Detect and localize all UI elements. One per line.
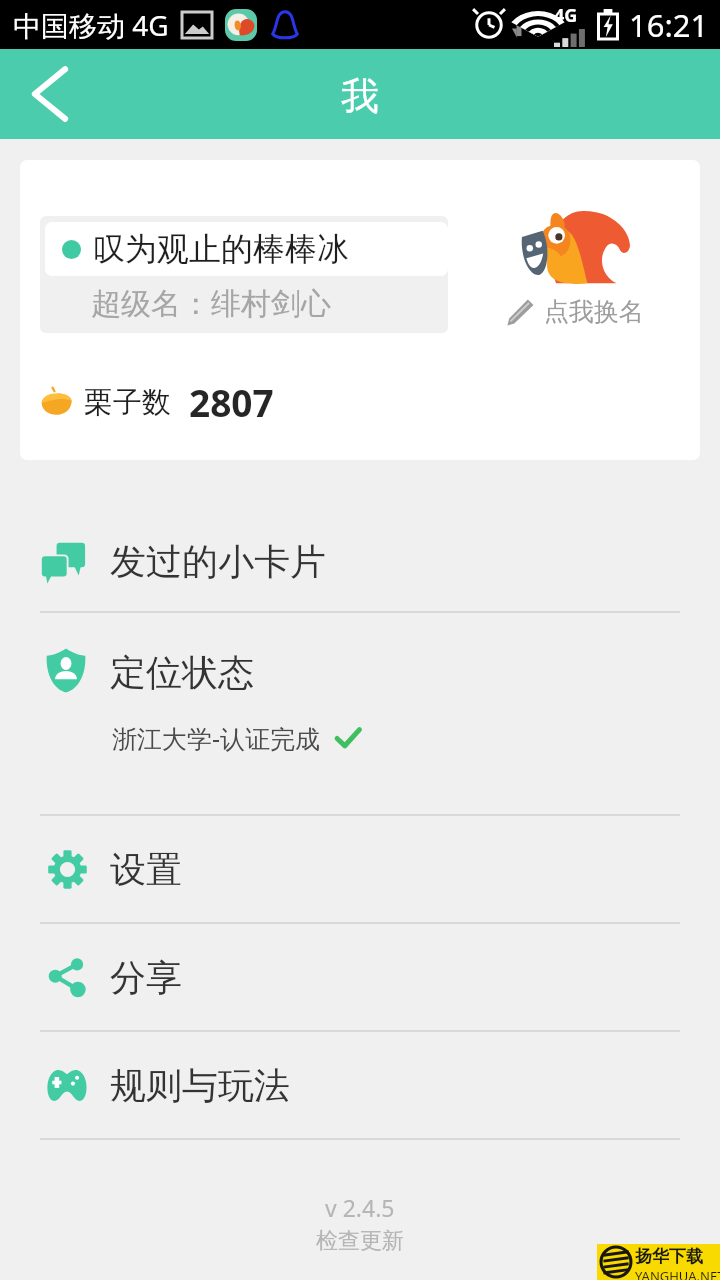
- staticText: 我: [341, 72, 379, 120]
- button[interactable]: 点我换名: [476, 208, 672, 327]
- staticText: 发过的小卡片: [110, 539, 326, 584]
- staticText: 点我换名: [544, 296, 644, 327]
- staticText: 叹为观止的棒棒冰: [93, 229, 349, 269]
- staticText: 规则与玩法: [110, 1063, 290, 1108]
- button[interactable]: 叹为观止的棒棒冰: [45, 222, 448, 276]
- button[interactable]: 发过的小卡片: [0, 492, 720, 611]
- staticText: 定位状态: [110, 650, 254, 695]
- staticText: 浙江大学-认证完成: [112, 721, 321, 755]
- staticText: 检查更新: [316, 1227, 404, 1255]
- button[interactable]: 设置: [0, 816, 720, 922]
- staticText: 16:21: [629, 4, 709, 46]
- button[interactable]: 规则与玩法: [0, 1032, 720, 1138]
- staticText: 扬华下载: [635, 1246, 703, 1267]
- staticText: 4G: [554, 3, 578, 28]
- staticText: 栗子数: [84, 384, 171, 421]
- staticText: 设置: [110, 847, 182, 892]
- button[interactable]: 定位状态: [0, 613, 720, 814]
- staticText: 2807: [189, 377, 274, 427]
- button[interactable]: 分享: [0, 924, 720, 1030]
- staticText: 中国移动 4G: [13, 6, 169, 44]
- staticText: v 2.4.5: [325, 1192, 395, 1223]
- button[interactable]: Back: [0, 49, 100, 139]
- staticText: 分享: [110, 955, 182, 1000]
- staticText: YANGHUA.NET: [635, 1267, 720, 1280]
- staticText: 超级名：绯村剑心: [91, 285, 331, 323]
